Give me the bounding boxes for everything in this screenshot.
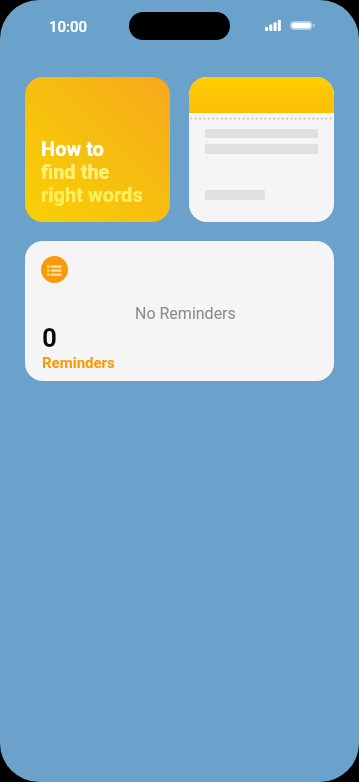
staticText: No Reminders	[135, 304, 236, 323]
button[interactable]: Reminders list	[25, 241, 334, 381]
staticText: Reminders	[42, 354, 115, 372]
staticText: How to	[41, 137, 104, 160]
other: Cellular signal	[265, 20, 283, 31]
staticText: right words	[41, 183, 143, 206]
button[interactable]: How to	[25, 77, 170, 222]
other: Reminders list	[41, 256, 68, 283]
staticText: 10:00	[49, 18, 88, 36]
staticText: find the	[41, 160, 110, 183]
staticText: 0	[42, 323, 57, 353]
other: Battery	[290, 21, 315, 31]
button[interactable]	[189, 77, 334, 222]
